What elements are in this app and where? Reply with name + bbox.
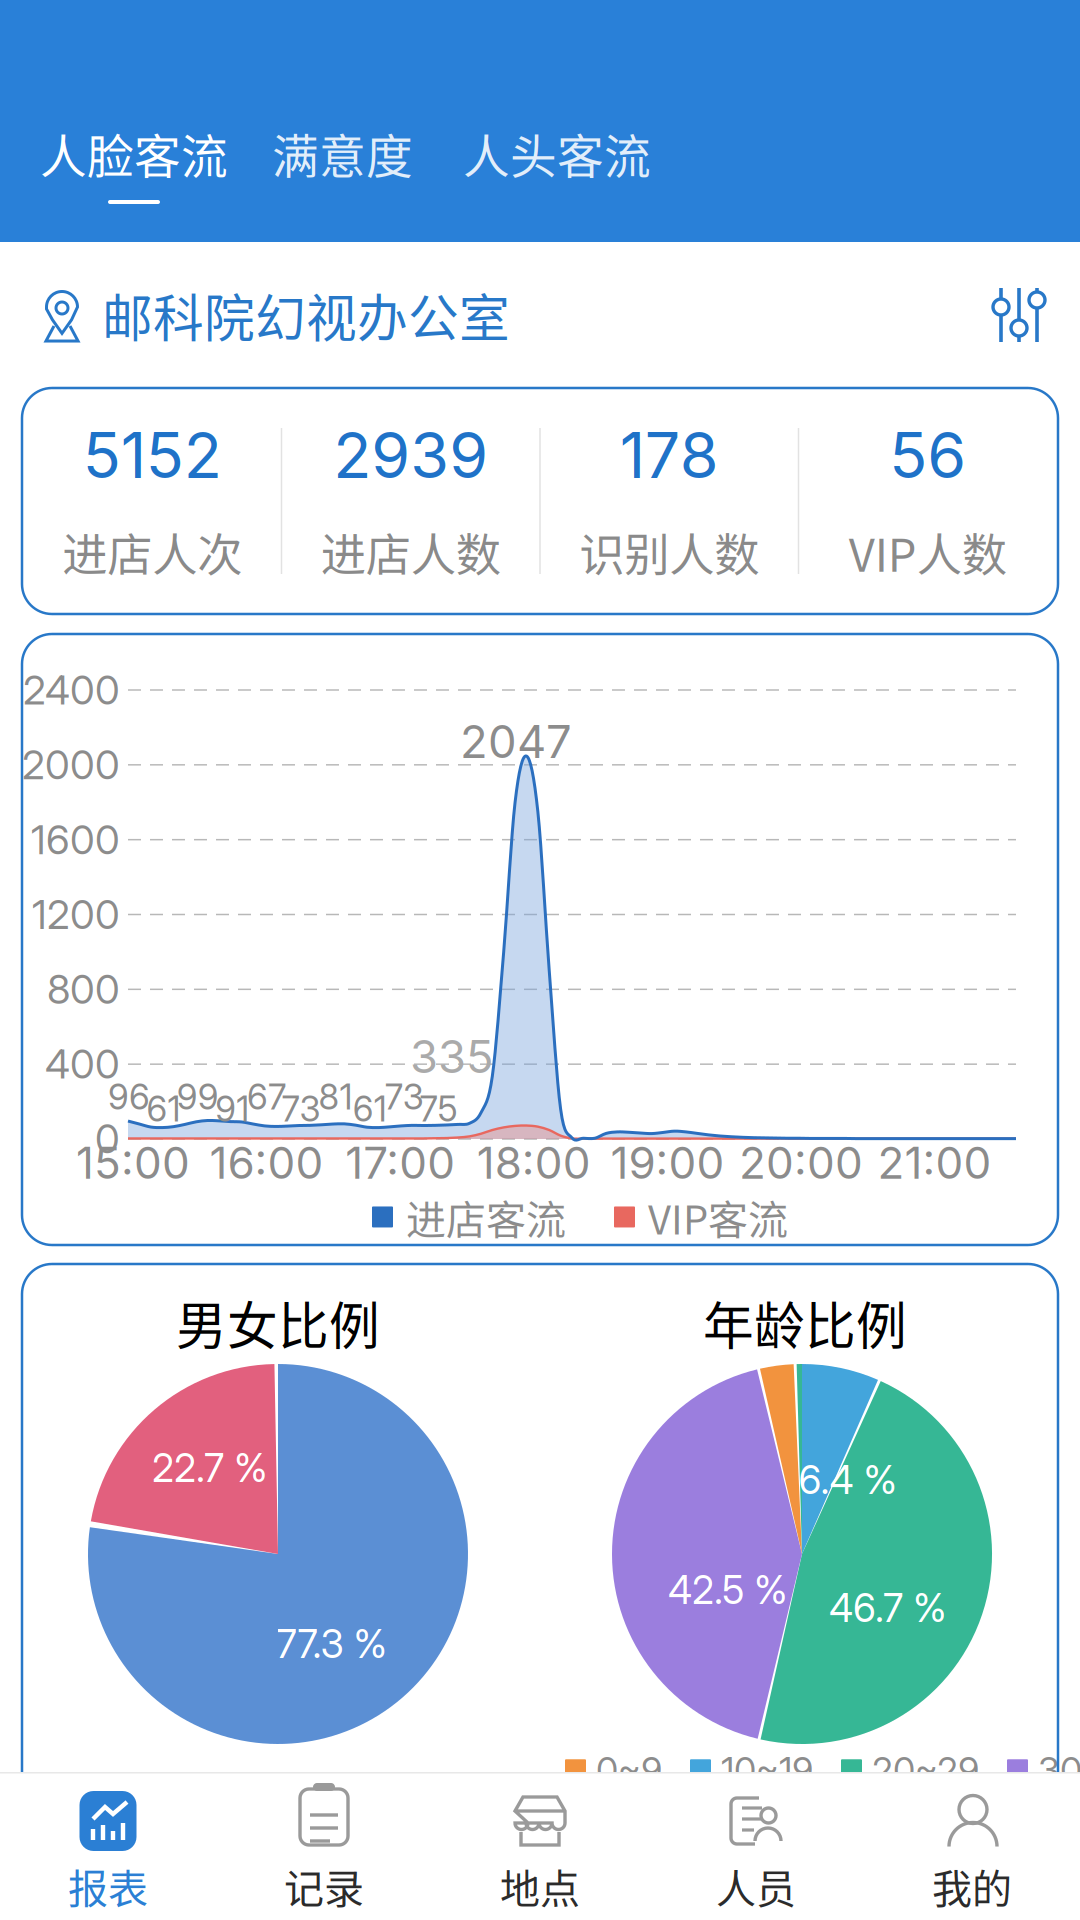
staticText: 61 xyxy=(146,1088,180,1130)
staticText: 91 xyxy=(215,1088,249,1130)
staticText: 67 xyxy=(247,1076,286,1118)
staticText: 17:00 xyxy=(345,1136,455,1189)
staticText: 77.3 % xyxy=(276,1621,387,1667)
staticText: 进店人数 xyxy=(321,519,501,585)
staticText: 记录 xyxy=(284,1857,364,1915)
staticText: 10~19 xyxy=(721,1748,813,1792)
staticText: 46.7 % xyxy=(829,1585,947,1631)
staticText: 400 xyxy=(45,1040,120,1088)
staticText: VIP客流 xyxy=(648,1188,788,1246)
staticText: 56 xyxy=(889,417,966,493)
staticText: 地点 xyxy=(500,1857,580,1915)
staticText: 73 xyxy=(281,1088,320,1130)
staticText: 73 xyxy=(385,1076,424,1118)
staticText: 6.4 % xyxy=(798,1457,897,1503)
staticText: 邮科院幻视办公室 xyxy=(102,278,510,352)
staticText: 识别人数 xyxy=(579,519,759,585)
staticText: 我的 xyxy=(932,1857,1012,1915)
staticText: 75 xyxy=(420,1088,458,1130)
staticText: 19:00 xyxy=(610,1136,724,1189)
staticText: 满意度 xyxy=(272,119,413,187)
staticText: 335 xyxy=(410,1029,494,1084)
staticText: 人员 xyxy=(716,1857,796,1915)
staticText: 1200 xyxy=(32,890,120,939)
button[interactable]: 人员 xyxy=(648,1772,864,1920)
staticText: 年龄比例 xyxy=(703,1286,907,1359)
button[interactable]: 人头客流 xyxy=(463,119,651,187)
staticText: 96 xyxy=(108,1076,150,1118)
staticText: 18:00 xyxy=(477,1136,591,1189)
button[interactable]: 满意度 xyxy=(272,119,413,187)
staticText: 21:00 xyxy=(878,1136,992,1189)
staticText: 人头客流 xyxy=(463,119,651,187)
staticText: 22.7 % xyxy=(152,1445,268,1491)
staticText: VIP人数 xyxy=(849,519,1007,585)
button[interactable]: 人脸客流 xyxy=(40,119,228,204)
staticText: 1600 xyxy=(31,815,120,864)
staticText: 2939 xyxy=(333,417,488,493)
staticText: 进店客流 xyxy=(406,1188,566,1246)
staticText: 报表 xyxy=(68,1857,148,1915)
staticText: 0~9 xyxy=(596,1748,662,1792)
button[interactable]: 报表 xyxy=(0,1772,216,1920)
staticText: 进店人次 xyxy=(62,519,242,585)
button[interactable]: 筛选 xyxy=(996,242,1080,388)
staticText: 20:00 xyxy=(739,1136,863,1189)
staticText: 81 xyxy=(318,1076,352,1118)
button[interactable]: 我的 xyxy=(864,1772,1080,1920)
button[interactable]: 记录 xyxy=(216,1772,432,1920)
staticText: 2047 xyxy=(460,714,572,769)
staticText: 61 xyxy=(353,1088,387,1130)
staticText: 5152 xyxy=(83,417,222,493)
button[interactable]: 邮科院幻视办公室 xyxy=(0,242,510,388)
staticText: 16:00 xyxy=(210,1136,324,1189)
staticText: 99 xyxy=(177,1076,219,1118)
button[interactable]: 地点 xyxy=(432,1772,648,1920)
staticText: 20~29 xyxy=(872,1748,979,1792)
staticText: 0 xyxy=(95,1115,120,1163)
staticText: 800 xyxy=(47,965,120,1013)
staticText: 2400 xyxy=(23,666,120,714)
staticText: 42.5 % xyxy=(668,1567,788,1613)
staticText: 15:00 xyxy=(76,1136,190,1189)
staticText: 人脸客流 xyxy=(40,119,228,187)
staticText: 男女比例 xyxy=(176,1286,380,1359)
staticText: 30~39 xyxy=(1038,1748,1080,1792)
staticText: 2000 xyxy=(22,741,120,789)
staticText: 178 xyxy=(620,417,719,493)
